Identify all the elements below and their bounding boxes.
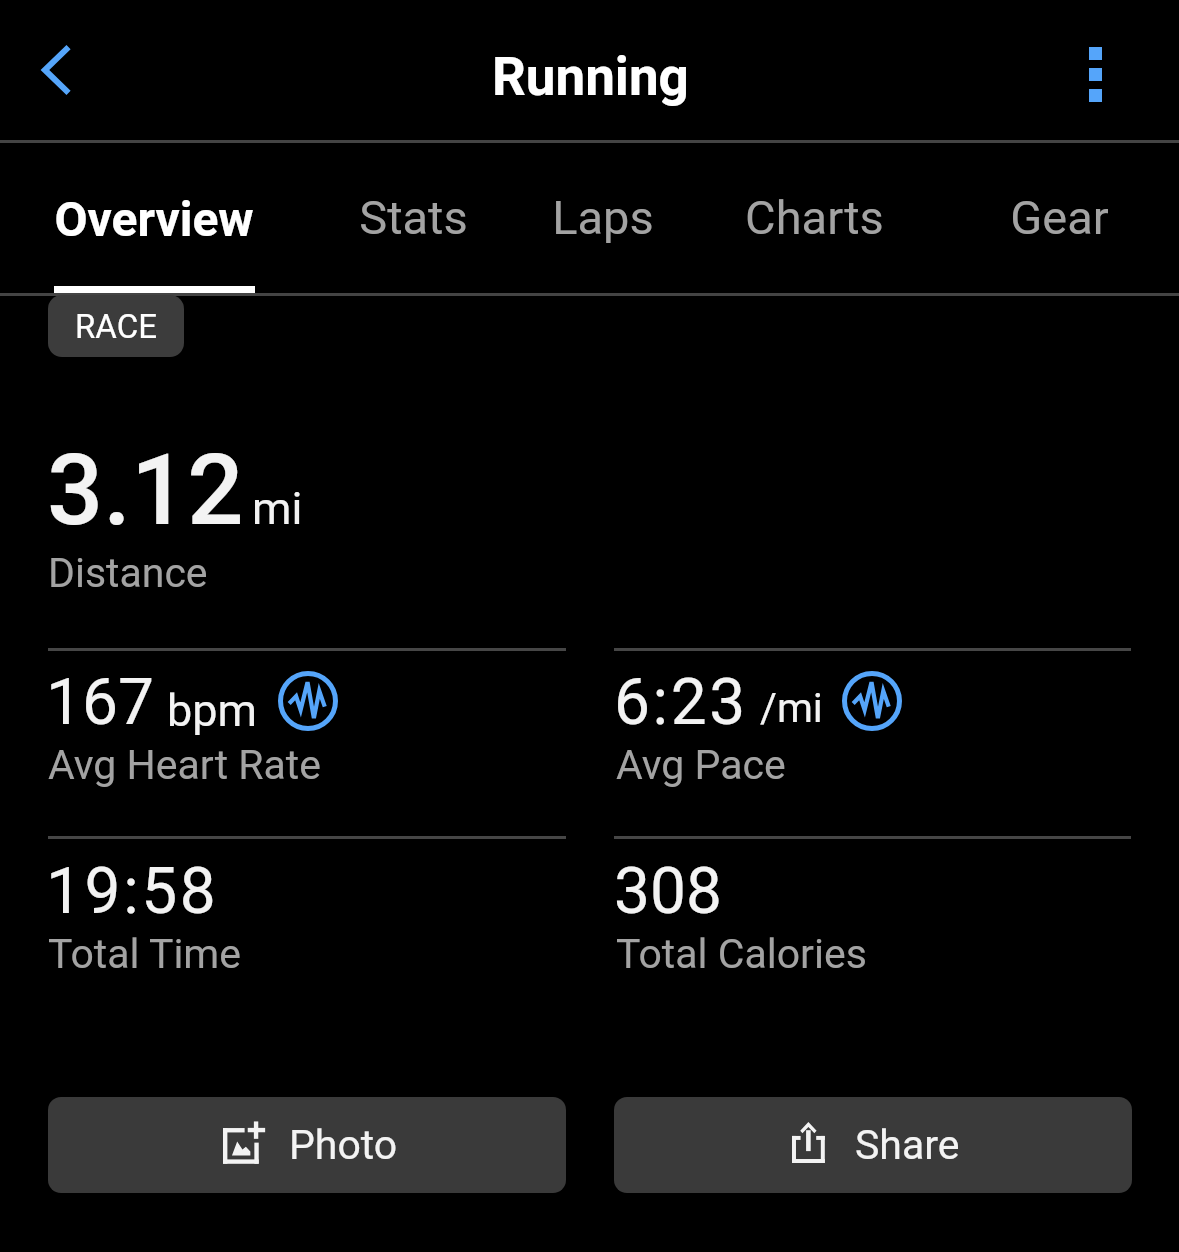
button[interactable]: Gear xyxy=(941,141,1177,294)
staticText: Total Calories xyxy=(616,930,867,978)
button[interactable]: RACE xyxy=(48,295,184,357)
staticText: 167 xyxy=(46,665,154,740)
staticText: 308 xyxy=(614,854,722,929)
staticText: 6:23 xyxy=(614,665,748,740)
staticText: Total Time xyxy=(48,930,242,978)
staticText: 3.12 xyxy=(47,432,244,548)
button[interactable]: Laps xyxy=(485,141,721,294)
button[interactable]: Back xyxy=(9,22,105,118)
button[interactable]: Overview xyxy=(36,141,272,294)
staticText: Laps xyxy=(552,190,654,245)
staticText: Distance xyxy=(48,549,208,597)
button[interactable]: More options xyxy=(1056,35,1134,113)
staticText: /mi xyxy=(760,684,823,732)
staticText: Photo xyxy=(289,1121,398,1169)
button[interactable]: Photo xyxy=(48,1097,566,1193)
staticText: Avg Pace xyxy=(616,741,786,789)
staticText: Running xyxy=(492,46,689,108)
staticText: Stats xyxy=(359,190,468,245)
staticText: Overview xyxy=(54,191,254,247)
staticText: Avg Heart Rate xyxy=(48,741,322,789)
staticText: Share xyxy=(855,1121,960,1169)
staticText: Charts xyxy=(745,190,884,245)
button[interactable]: Stats xyxy=(295,141,531,294)
button[interactable]: Charts xyxy=(696,141,932,294)
button[interactable]: Share xyxy=(614,1097,1132,1193)
staticText: mi xyxy=(252,482,303,535)
staticText: RACE xyxy=(75,307,157,346)
staticText: 19:58 xyxy=(46,854,219,929)
staticText: bpm xyxy=(167,684,257,737)
staticText: Gear xyxy=(1010,190,1109,245)
